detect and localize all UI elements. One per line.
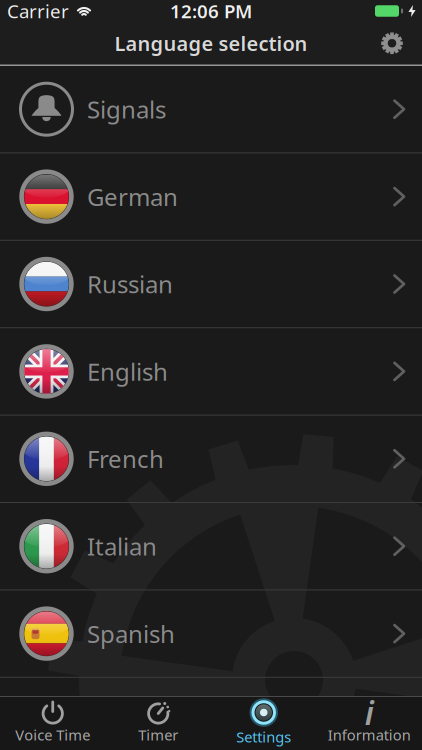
button[interactable]: German [0,153,422,241]
staticText: Settings [236,727,291,746]
button[interactable]: French [0,416,422,503]
staticText: Timer [138,725,178,744]
staticText: French [87,443,164,475]
button[interactable]: English [0,328,422,416]
staticText: Language selection [114,30,307,57]
button[interactable]: Settings [378,29,422,57]
staticText: 12:06 PM [170,0,252,23]
button[interactable]: Voice Time [0,701,105,744]
staticText: Russian [87,268,173,300]
staticText: Voice Time [15,725,90,744]
button[interactable]: Settings [211,699,316,746]
button[interactable]: Italian [0,503,422,590]
button[interactable]: Russian [0,241,422,328]
button[interactable]: Timer [105,701,211,744]
button[interactable]: Signals [0,66,422,153]
staticText: Spanish [87,618,175,650]
staticText: Information [328,725,411,744]
button[interactable]: Spanish [0,590,422,678]
staticText: Italian [87,530,157,562]
staticText: English [87,355,168,387]
staticText: i [365,691,374,734]
staticText: German [87,181,178,213]
staticText: Signals [87,93,166,125]
button[interactable]: i [316,701,422,744]
staticText: Carrier [7,0,69,23]
